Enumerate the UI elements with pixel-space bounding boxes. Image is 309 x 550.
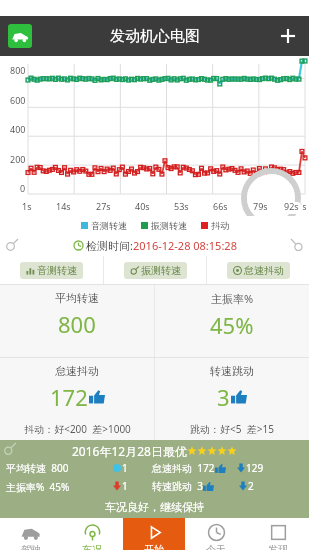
staticText: 车况	[82, 543, 102, 550]
staticText: 92s	[292, 200, 307, 212]
staticText: 振测转速	[141, 264, 181, 277]
staticText: 600	[10, 94, 26, 106]
staticText: 主振率% 45%	[6, 480, 70, 494]
staticText: 2	[248, 479, 254, 493]
staticText: 2016年12月28日最优	[72, 443, 187, 459]
staticText: 今天	[206, 543, 226, 550]
staticText: 平均转速 800	[6, 461, 69, 475]
staticText: 800	[58, 309, 96, 339]
staticText: 3	[217, 382, 230, 412]
staticText: 驾驶	[21, 543, 41, 550]
staticText: 172	[50, 382, 88, 412]
staticText: 0	[20, 182, 26, 194]
staticText: 1	[122, 461, 128, 475]
staticText: 2016-12-28 08:15:28	[133, 238, 237, 253]
staticText: 发动机心电图	[110, 27, 200, 46]
staticText: 跳动：好<5 差>15	[190, 422, 274, 436]
button[interactable]: 转速跳动	[155, 358, 309, 440]
button[interactable]: 音测转速	[0, 256, 103, 284]
staticText: 平均转速	[55, 291, 99, 305]
staticText: 车况良好，继续保持	[105, 500, 204, 514]
staticText: 怠速抖动	[55, 364, 99, 378]
button[interactable]: 车况	[61, 518, 123, 550]
staticText: 92s	[284, 200, 299, 212]
staticText: 400	[10, 123, 26, 135]
staticText: 800	[10, 64, 26, 76]
staticText: 40s	[135, 200, 150, 212]
button[interactable]: 发现	[247, 518, 309, 550]
staticText: 14s	[56, 200, 71, 212]
staticText: 45%	[210, 310, 254, 340]
staticText: 66s	[213, 200, 228, 212]
staticText: 振测转速	[151, 220, 187, 231]
staticText: 抖动：好<200 差>1000	[24, 422, 131, 436]
button[interactable]: 怠速抖动	[207, 256, 309, 284]
staticText: 音测转速	[37, 264, 77, 277]
button[interactable]: Vehicle	[8, 24, 32, 48]
staticText: 1	[122, 479, 128, 493]
button[interactable]: 主振率%	[155, 285, 309, 357]
button[interactable]: 平均转速	[0, 285, 154, 357]
staticText: 转速跳动	[210, 364, 254, 378]
button[interactable]: 驾驶	[0, 518, 61, 550]
staticText: 怠速抖动	[244, 264, 284, 277]
button[interactable]: 怠速抖动	[0, 358, 154, 440]
staticText: 27s	[96, 200, 111, 212]
button[interactable]: Add	[277, 25, 299, 47]
staticText: 抖动	[211, 220, 229, 231]
staticText: 主振率%	[211, 291, 254, 306]
staticText: 开始	[144, 543, 164, 550]
button[interactable]: 开始	[123, 518, 185, 550]
staticText: 检测时间:	[86, 238, 133, 253]
button[interactable]: 今天	[185, 518, 247, 550]
staticText: 怠速抖动 172	[152, 461, 215, 475]
staticText: 79s	[253, 200, 268, 212]
staticText: 1s	[22, 200, 32, 212]
staticText: 129	[246, 461, 264, 475]
staticText: 转速跳动 3	[152, 479, 203, 493]
staticText: 发现	[268, 543, 288, 550]
button[interactable]: 振测转速	[104, 256, 206, 284]
staticText: 音测转速	[91, 220, 127, 231]
staticText: 200	[10, 153, 26, 165]
staticText: 53s	[174, 200, 189, 212]
